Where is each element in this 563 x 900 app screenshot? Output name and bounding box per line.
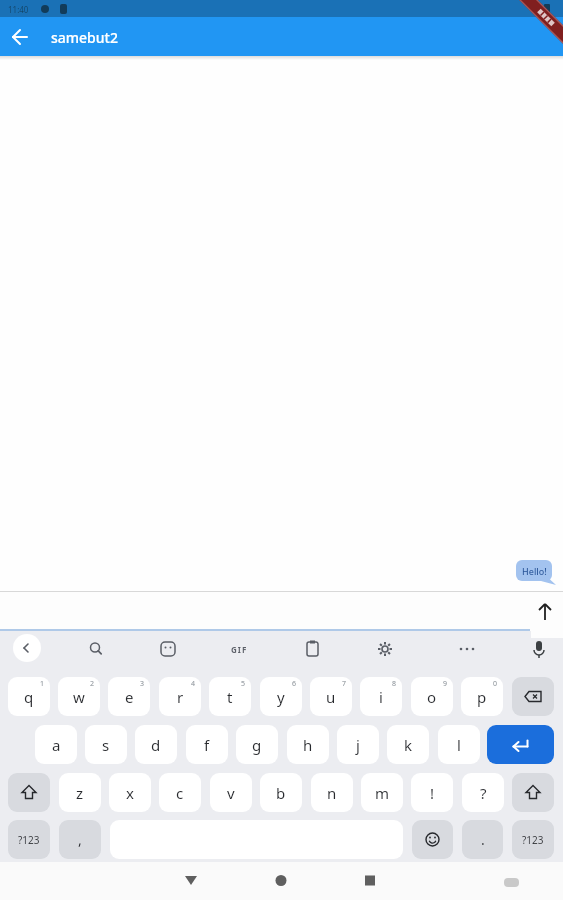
button[interactable]: c <box>159 773 201 812</box>
button[interactable]: y <box>260 677 302 716</box>
staticText: b <box>276 783 286 803</box>
staticText: , <box>78 830 82 849</box>
staticText: v <box>227 783 235 803</box>
button[interactable]: ! <box>411 773 453 812</box>
staticText: 11:40 <box>8 4 29 15</box>
button[interactable] <box>13 634 41 662</box>
staticText: c <box>176 783 184 803</box>
button[interactable]: q <box>8 677 50 716</box>
button[interactable] <box>412 820 453 859</box>
button[interactable]: ?123 <box>512 820 554 859</box>
button[interactable]: w <box>58 677 100 716</box>
staticText: y <box>277 687 285 707</box>
staticText: h <box>303 735 313 755</box>
staticText: g <box>252 735 262 755</box>
staticText: ?123 <box>522 833 544 847</box>
button[interactable]: r <box>159 677 201 716</box>
button[interactable] <box>500 870 524 894</box>
staticText: l <box>457 735 461 755</box>
button[interactable] <box>533 600 557 624</box>
button[interactable]: b <box>260 773 302 812</box>
staticText: d <box>151 735 161 755</box>
staticText: p <box>477 687 487 707</box>
button[interactable] <box>357 867 383 893</box>
button[interactable]: x <box>109 773 151 812</box>
button[interactable]: h <box>287 725 329 764</box>
button[interactable]: t <box>209 677 251 716</box>
staticText: i <box>379 687 383 707</box>
button[interactable]: e <box>108 677 150 716</box>
button[interactable]: d <box>135 725 177 764</box>
button[interactable]: f <box>186 725 228 764</box>
staticText: r <box>177 687 184 707</box>
staticText: q <box>24 687 34 707</box>
staticText: 5 <box>241 679 246 689</box>
staticText: 8 <box>392 679 397 689</box>
button[interactable]: a <box>35 725 77 764</box>
button[interactable]: z <box>59 773 101 812</box>
button[interactable]: ?123 <box>8 820 50 859</box>
staticText: a <box>52 735 61 755</box>
staticText: x <box>126 783 134 803</box>
staticText: k <box>404 735 413 755</box>
button[interactable] <box>178 867 204 893</box>
button[interactable]: ? <box>462 773 504 812</box>
button[interactable] <box>487 725 554 764</box>
staticText: j <box>356 735 360 755</box>
button[interactable]: i <box>360 677 402 716</box>
button[interactable]: s <box>85 725 127 764</box>
button[interactable]: l <box>438 725 480 764</box>
button[interactable] <box>268 867 294 893</box>
button[interactable] <box>6 23 34 51</box>
button[interactable]: o <box>411 677 453 716</box>
staticText: ! <box>430 783 435 803</box>
staticText: Hello! <box>522 565 547 577</box>
staticText: m <box>375 783 390 803</box>
button[interactable]: k <box>387 725 429 764</box>
button[interactable]: u <box>310 677 352 716</box>
staticText: o <box>427 687 437 707</box>
button[interactable]: m <box>361 773 403 812</box>
staticText: 4 <box>191 679 196 689</box>
staticText: 7 <box>342 679 347 689</box>
staticText: samebut2 <box>51 28 118 47</box>
button[interactable] <box>8 773 50 812</box>
staticText: 3 <box>140 679 145 689</box>
staticText: 9 <box>443 679 448 689</box>
staticText: z <box>76 783 84 803</box>
staticText: GIF <box>231 644 248 655</box>
button[interactable]: j <box>337 725 379 764</box>
button[interactable]: . <box>462 820 503 859</box>
staticText: 6 <box>292 679 297 689</box>
staticText: n <box>327 783 337 803</box>
button[interactable]: , <box>59 820 101 859</box>
button[interactable] <box>512 773 554 812</box>
staticText: 1 <box>40 679 45 689</box>
button[interactable]: n <box>311 773 353 812</box>
button[interactable]: p <box>461 677 503 716</box>
button[interactable]: v <box>210 773 252 812</box>
staticText: . <box>481 830 485 849</box>
staticText: 2 <box>90 679 95 689</box>
staticText: s <box>102 735 110 755</box>
staticText: ?123 <box>18 833 40 847</box>
staticText: f <box>204 735 210 755</box>
staticText: ? <box>480 783 487 803</box>
staticText: e <box>125 687 134 707</box>
staticText: w <box>73 687 85 707</box>
button[interactable]: g <box>236 725 278 764</box>
button[interactable]: Hello! <box>516 560 558 586</box>
staticText: t <box>227 687 233 707</box>
staticText: 0 <box>493 679 498 689</box>
button[interactable] <box>512 677 554 716</box>
staticText: u <box>326 687 336 707</box>
